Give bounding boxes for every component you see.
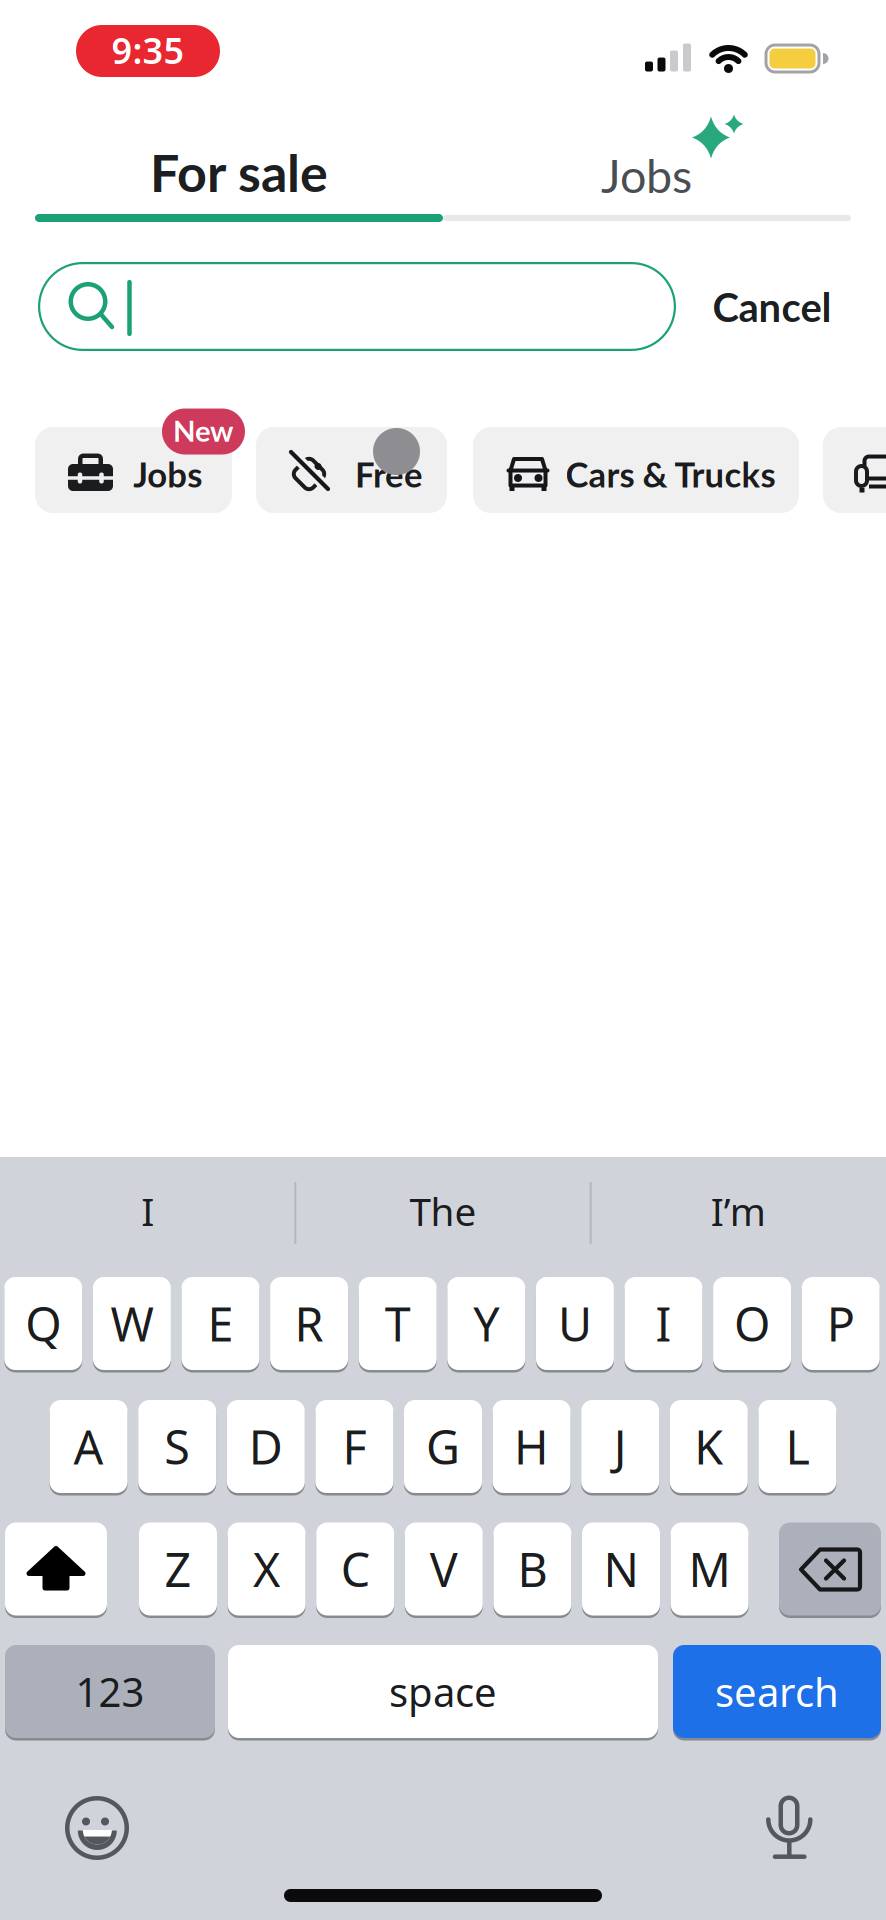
staticText: O	[734, 1292, 770, 1354]
button[interactable]: 123	[5, 1643, 215, 1739]
button[interactable]: Emoji	[57, 1788, 137, 1868]
staticText: Jobs	[133, 453, 202, 495]
staticText: Y	[473, 1292, 499, 1354]
staticText: For sale	[150, 141, 328, 203]
staticText: search	[715, 1665, 839, 1718]
button[interactable]: Cars & Trucks	[473, 427, 799, 513]
button[interactable]: H	[493, 1398, 571, 1494]
button[interactable]: Q	[4, 1275, 82, 1371]
button[interactable]: D	[227, 1398, 305, 1494]
button[interactable]: Shift	[5, 1521, 107, 1617]
button[interactable]: The	[303, 1161, 583, 1261]
button[interactable]: I	[624, 1275, 702, 1371]
staticText: Cancel	[712, 282, 831, 330]
staticText: The	[409, 1185, 476, 1237]
staticText: W	[110, 1292, 153, 1354]
button[interactable]: R	[270, 1275, 348, 1371]
staticText: T	[385, 1292, 411, 1354]
staticText: S	[164, 1415, 190, 1477]
button[interactable]: search	[673, 1643, 881, 1739]
staticText: Jobs	[601, 147, 692, 203]
staticText: F	[342, 1415, 366, 1477]
staticText: I’m	[711, 1185, 766, 1237]
button[interactable]: Jobs	[35, 427, 232, 513]
button[interactable]: P	[802, 1275, 880, 1371]
button[interactable]: For sale	[35, 124, 443, 220]
staticText: C	[341, 1538, 370, 1600]
staticText: P	[827, 1292, 855, 1354]
staticText: H	[514, 1415, 549, 1477]
staticText: 123	[75, 1665, 144, 1718]
button[interactable]: J	[581, 1398, 659, 1494]
button[interactable]: W	[93, 1275, 171, 1371]
staticText: V	[430, 1538, 458, 1600]
button[interactable]: Delete	[779, 1521, 881, 1617]
button[interactable]: V	[405, 1521, 483, 1617]
staticText: D	[249, 1415, 283, 1477]
button[interactable]: A	[50, 1398, 128, 1494]
staticText: 9:35	[111, 26, 184, 74]
button[interactable]: Furniture	[823, 427, 886, 513]
staticText: L	[785, 1415, 809, 1477]
button[interactable]: space	[228, 1643, 658, 1739]
button[interactable]: Cancel	[679, 262, 865, 350]
button[interactable]: N	[582, 1521, 660, 1617]
button[interactable]: I’m	[598, 1161, 878, 1261]
staticText: Z	[164, 1538, 191, 1600]
staticText: N	[603, 1538, 638, 1600]
button[interactable]: Dictation	[748, 1786, 828, 1866]
button[interactable]: Y	[447, 1275, 525, 1371]
button[interactable]: S	[138, 1398, 216, 1494]
button[interactable]: F	[315, 1398, 393, 1494]
button[interactable]: Jobs	[443, 124, 851, 220]
button[interactable]: C	[316, 1521, 394, 1617]
staticText: Q	[25, 1292, 61, 1354]
staticText: I	[141, 1185, 154, 1237]
button[interactable]: T	[359, 1275, 437, 1371]
button[interactable]: Search	[38, 262, 676, 351]
button[interactable]: Free	[256, 427, 447, 513]
button[interactable]: G	[404, 1398, 482, 1494]
button[interactable]: O	[713, 1275, 791, 1371]
staticText: E	[207, 1292, 233, 1354]
button[interactable]: L	[758, 1398, 836, 1494]
staticText: I	[655, 1292, 671, 1354]
button[interactable]: U	[536, 1275, 614, 1371]
staticText: X	[253, 1538, 280, 1600]
staticText: B	[517, 1538, 547, 1600]
button[interactable]: B	[493, 1521, 571, 1617]
staticText: M	[689, 1538, 731, 1600]
button[interactable]: M	[671, 1521, 749, 1617]
staticText: K	[694, 1415, 723, 1477]
button[interactable]: I	[8, 1161, 288, 1261]
button[interactable]: Z	[139, 1521, 217, 1617]
staticText: Cars & Trucks	[565, 453, 775, 495]
staticText: Free	[355, 453, 423, 495]
staticText: G	[426, 1415, 460, 1477]
staticText: J	[614, 1415, 627, 1477]
button[interactable]: K	[670, 1398, 748, 1494]
staticText: A	[74, 1415, 104, 1477]
staticText: space	[389, 1665, 497, 1718]
staticText: R	[295, 1292, 324, 1354]
staticText: U	[558, 1292, 592, 1354]
staticText: New	[173, 413, 234, 448]
button[interactable]: E	[181, 1275, 259, 1371]
button[interactable]: X	[228, 1521, 306, 1617]
